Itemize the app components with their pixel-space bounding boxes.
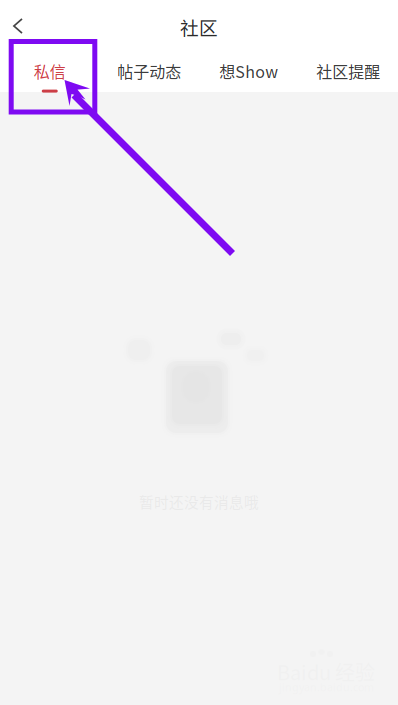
- staticText: 暂时还没有消息哦: [139, 491, 259, 512]
- staticText: 社区: [180, 13, 218, 40]
- staticText: 帖子动态: [117, 59, 181, 83]
- staticText: 想Show: [219, 59, 278, 83]
- button[interactable]: Back: [0, 0, 43, 52]
- button[interactable]: 私信: [0, 52, 99, 92]
- button[interactable]: 帖子动态: [99, 52, 199, 92]
- button[interactable]: 社区提醒: [298, 52, 398, 92]
- staticText: 社区提醒: [316, 59, 380, 83]
- button[interactable]: 想Show: [199, 52, 298, 92]
- staticText: 私信: [34, 59, 66, 83]
